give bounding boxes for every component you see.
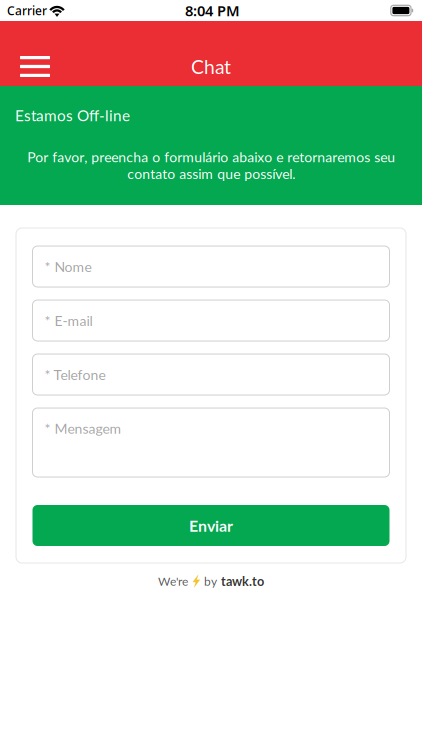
button[interactable]: We're: [158, 573, 264, 589]
button[interactable]: * Mensagem: [32, 408, 389, 477]
button[interactable]: Enviar: [32, 505, 389, 546]
staticText: * E-mail: [44, 312, 92, 329]
staticText: Estamos Off-line: [15, 106, 130, 124]
staticText: 8:04 PM: [185, 1, 240, 20]
staticText: by: [204, 574, 217, 588]
staticText: * Nome: [44, 258, 91, 275]
button[interactable]: Menu: [0, 48, 64, 85]
button[interactable]: * E-mail: [32, 300, 389, 341]
staticText: Por favor, preencha o formulário abaixo …: [27, 148, 395, 182]
staticText: Enviar: [189, 516, 233, 535]
staticText: * Telefone: [44, 366, 105, 383]
staticText: We're: [158, 574, 188, 588]
button[interactable]: * Nome: [32, 246, 389, 287]
staticText: tawk.to: [221, 573, 264, 589]
staticText: * Mensagem: [44, 420, 121, 437]
staticText: Carrier: [7, 2, 47, 18]
staticText: Chat: [191, 55, 231, 78]
button[interactable]: * Telefone: [32, 354, 389, 395]
